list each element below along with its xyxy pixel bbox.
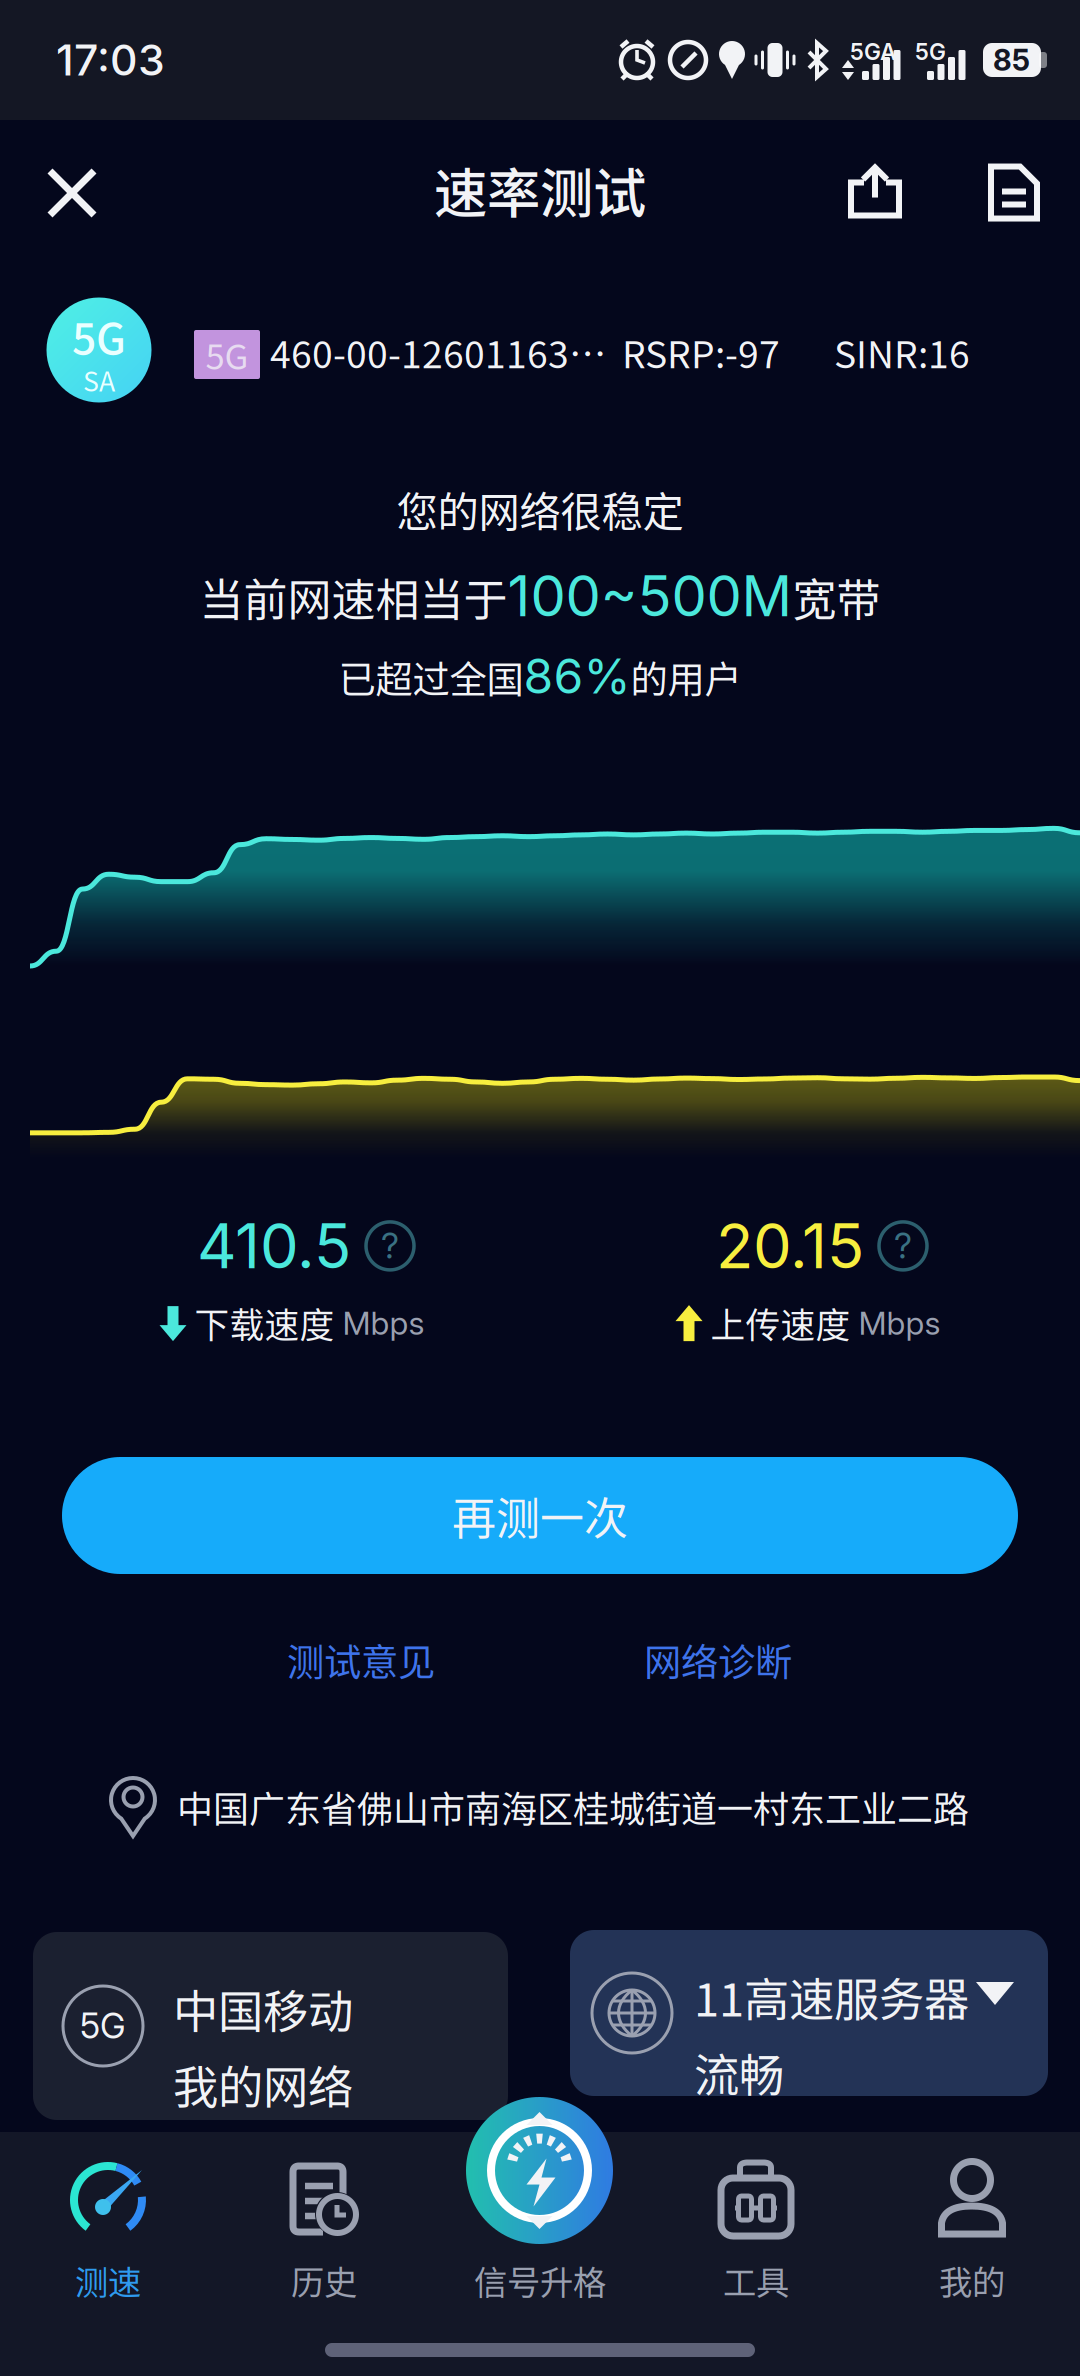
staticText: 17:03 [56,34,165,86]
staticText: 我的 [939,2256,1005,2304]
staticText: RSRP:-97 [622,325,780,379]
button[interactable]: 我的 [864,2160,1080,2360]
staticText: 历史 [291,2256,357,2304]
staticText: ? [381,1225,399,1267]
staticText: SA [83,361,115,399]
staticText: 5G [80,2005,126,2047]
staticText: 中国广东省佛山市南海区桂城街道一村东工业二路 [177,1781,969,1833]
staticText: 上传速度 [710,1298,850,1348]
staticText: Mbps [342,1304,424,1342]
staticText: SINR:16 [834,325,970,379]
button[interactable]: 工具 [648,2160,864,2360]
button[interactable]: 11高速服务器 [570,1930,1048,2096]
staticText: 我的网络 [173,2052,353,2117]
staticText: 中国移动 [173,1976,353,2042]
staticText: 11高速服务器 [694,1964,969,2030]
staticText: 网络诊断 [644,1633,792,1687]
staticText: 您的网络很稳定 [396,479,683,539]
staticText: 86% [523,647,630,705]
staticText: 410.5 [197,1209,351,1283]
button[interactable]: 信号升格 [432,2160,648,2360]
staticText: 测试意见 [287,1633,435,1687]
staticText: 5G [205,329,248,380]
staticText: 测速 [75,2256,141,2304]
staticText: 5G [915,38,946,65]
button[interactable]: 测速 [0,2160,216,2360]
staticText: 的用户 [630,650,741,704]
button[interactable]: 再测一次 [62,1457,1018,1574]
staticText: 20.15 [716,1209,864,1283]
staticText: 流畅 [694,2040,784,2105]
staticText: 宽带 [792,565,880,629]
button[interactable]: 关闭 [24,135,120,251]
staticText: 下载速度 [194,1298,334,1348]
staticText: 460-00-12601163… [270,325,606,379]
staticText: 85 [993,42,1030,78]
staticText: 已超过全国 [338,650,523,704]
staticText: 速率测试 [434,151,646,229]
staticText: 5GA [850,38,896,65]
staticText: 再测一次 [452,1484,628,1547]
button[interactable]: 测试意见 [231,1632,491,1688]
staticText: 100~500M [507,562,792,630]
button[interactable]: 历史 [216,2160,432,2360]
button[interactable]: 分享 [826,134,924,249]
staticText: 信号升格 [474,2256,606,2304]
staticText: ? [894,1225,912,1267]
button[interactable]: 信号升格 [466,2097,613,2244]
button[interactable]: 5G [33,1932,508,2120]
staticText: 5G [72,305,126,367]
staticText: 工具 [723,2256,789,2304]
staticText: 当前网速相当于 [199,565,507,629]
button[interactable]: 报告 [965,135,1063,250]
button[interactable]: 网络诊断 [588,1632,848,1688]
staticText: Mbps [858,1304,940,1342]
